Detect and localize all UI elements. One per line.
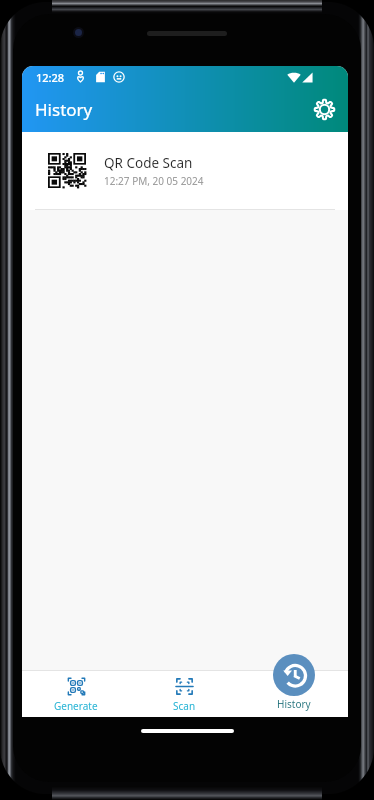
- button[interactable]: Scan: [130, 670, 239, 717]
- button[interactable]: QR Code Scan: [22, 132, 348, 209]
- staticText: History: [35, 98, 93, 121]
- button[interactable]: Generate: [22, 670, 130, 717]
- staticText: History: [277, 697, 311, 711]
- staticText: Scan: [173, 699, 196, 713]
- button[interactable]: Settings: [305, 90, 343, 128]
- staticText: Generate: [54, 699, 98, 713]
- staticText: 12:28: [36, 70, 65, 85]
- staticText: 12:27 PM, 20 05 2024: [104, 174, 204, 188]
- button[interactable]: History: [239, 670, 348, 717]
- staticText: QR Code Scan: [104, 154, 193, 172]
